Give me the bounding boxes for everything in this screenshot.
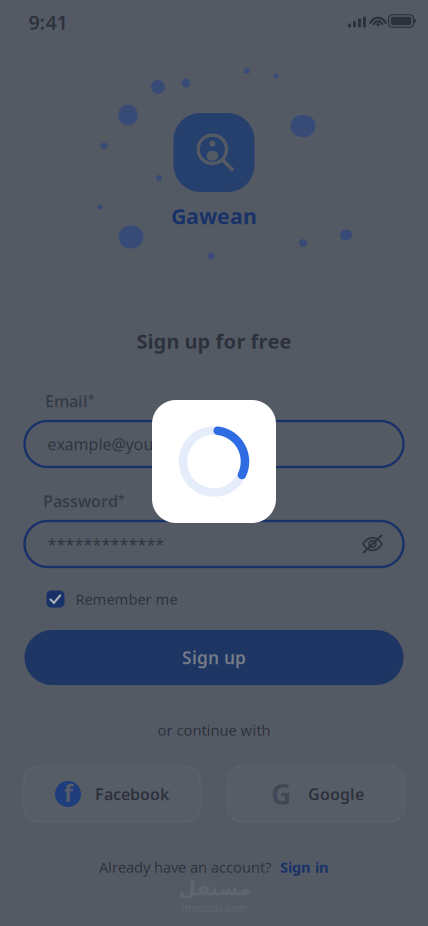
staticText: Already have an account?	[99, 857, 271, 877]
staticText: Password	[43, 490, 118, 512]
button[interactable]: Sign in	[280, 857, 329, 877]
button[interactable]: f	[24, 766, 200, 822]
staticText: Google	[308, 783, 364, 805]
staticText: G	[271, 775, 291, 813]
staticText: *	[88, 391, 95, 407]
button[interactable]: G	[228, 766, 404, 822]
staticText: mostaql.com	[181, 901, 246, 915]
staticText: f	[64, 778, 73, 808]
staticText: Email	[45, 390, 88, 412]
button[interactable]: Show password	[354, 526, 390, 562]
staticText: Sign in	[280, 857, 329, 877]
staticText: Sign up	[182, 646, 246, 669]
staticText: *************	[47, 533, 164, 555]
staticText: Sign up for free	[136, 328, 291, 354]
staticText: *	[118, 491, 125, 507]
staticText: 9:41	[28, 9, 67, 35]
button[interactable]: Remember me	[42, 584, 181, 614]
staticText: Facebook	[95, 783, 169, 805]
staticText: مستقل	[178, 877, 250, 900]
staticText: or continue with	[157, 720, 270, 740]
staticText: Remember me	[75, 589, 177, 609]
button[interactable]: Sign up	[24, 630, 403, 685]
staticText: Gawean	[171, 202, 257, 230]
staticText: example@your.com	[47, 433, 194, 455]
